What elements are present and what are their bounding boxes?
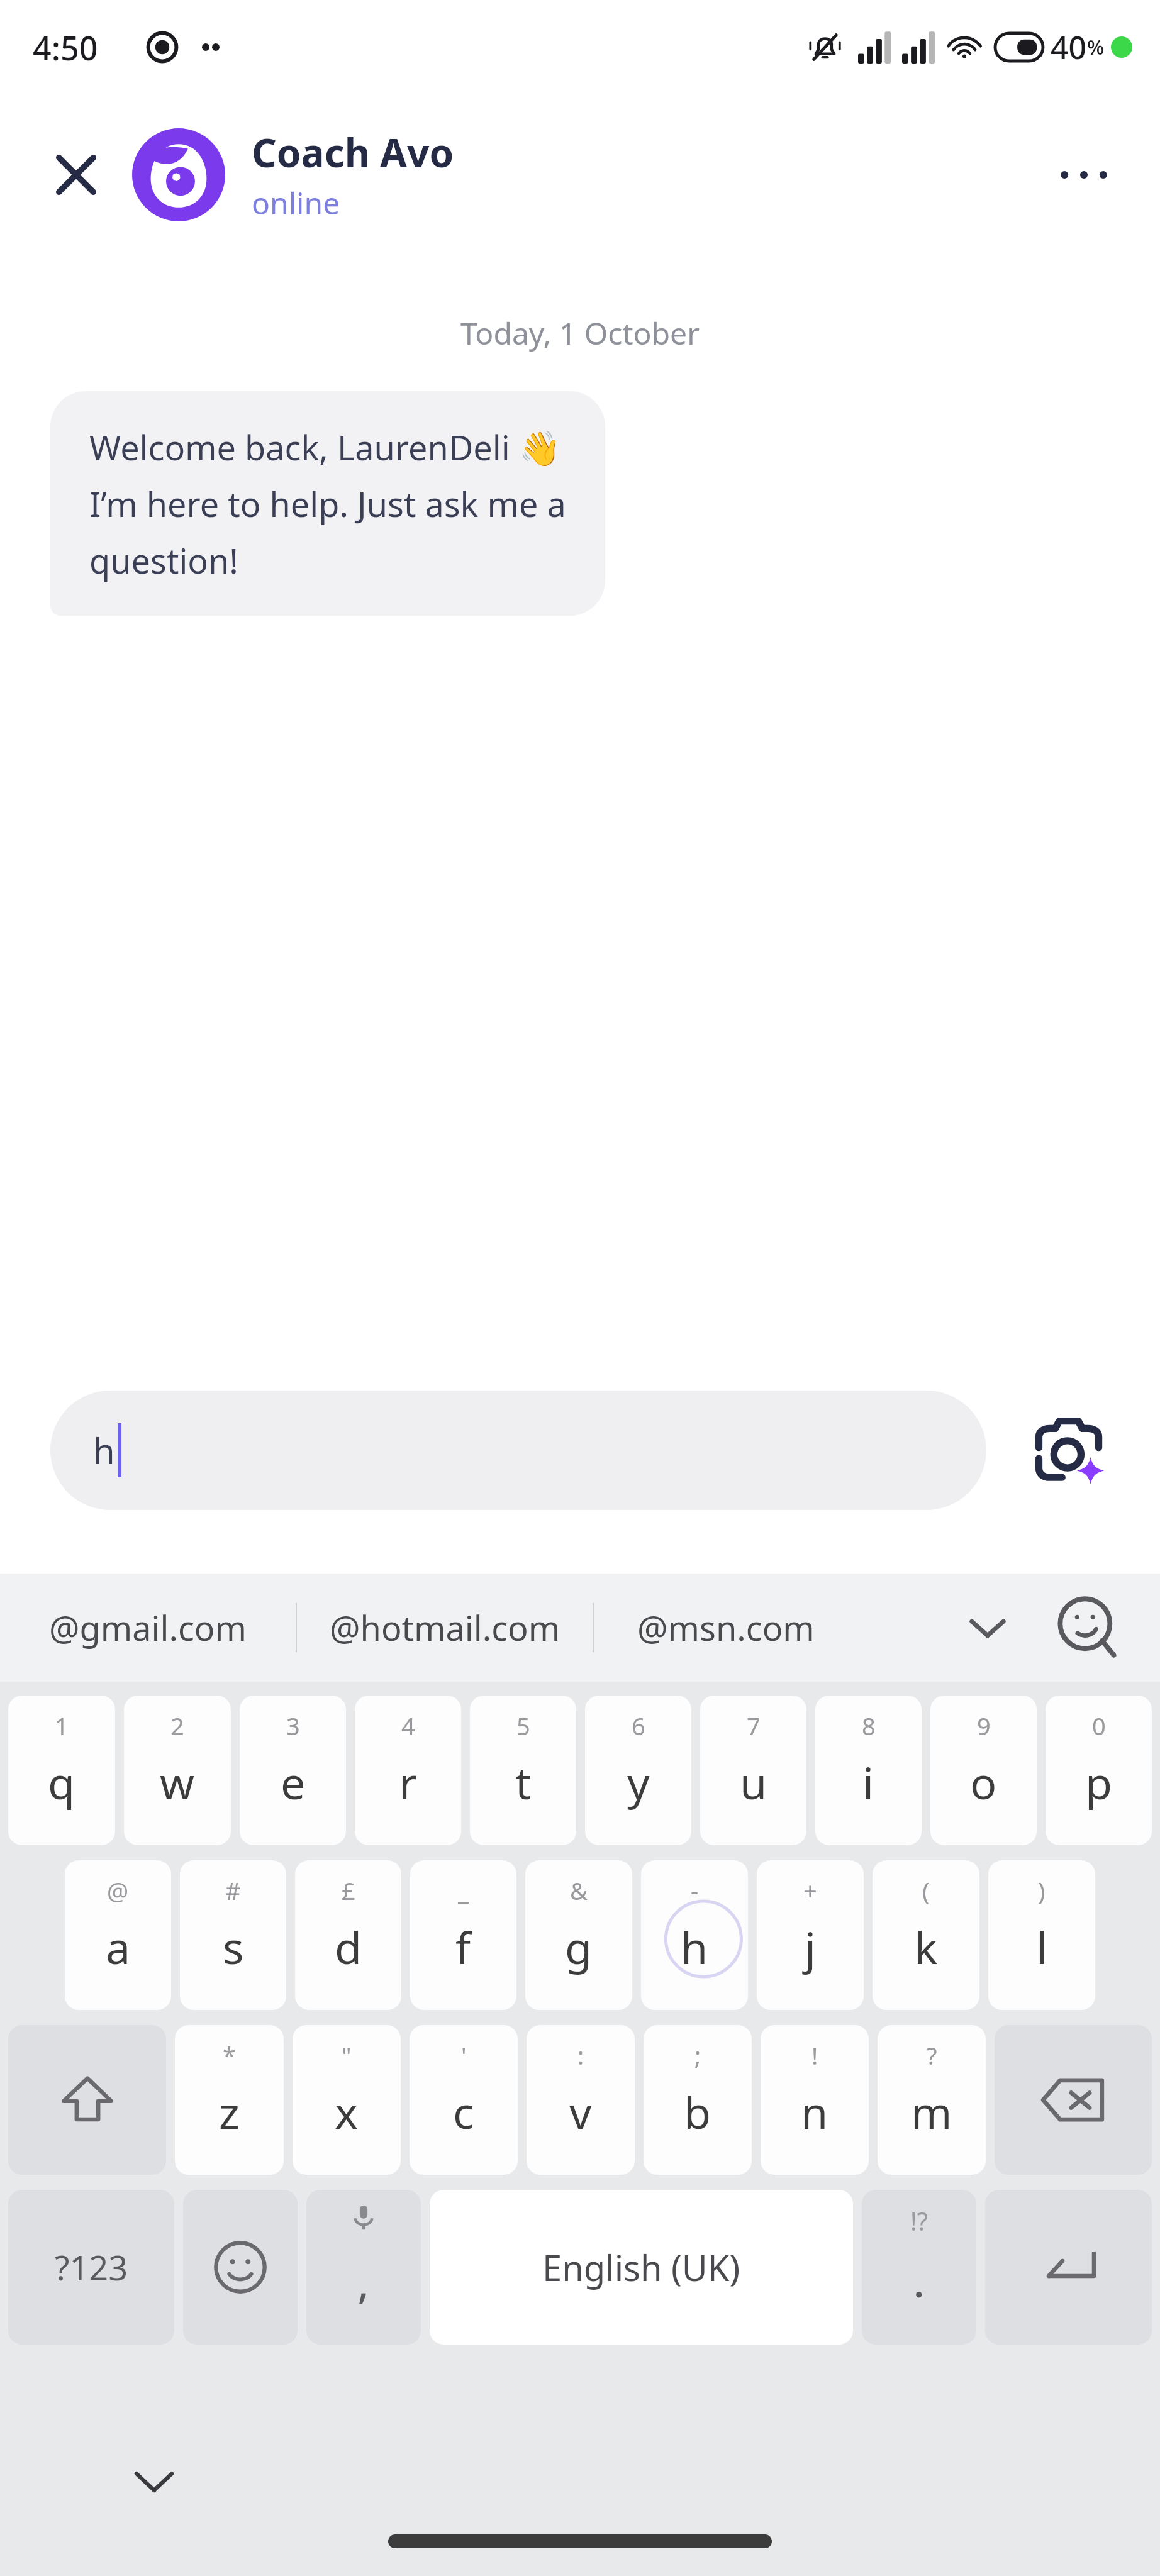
staticText: , — [357, 2250, 370, 2312]
staticText: & — [570, 1874, 588, 1907]
staticText: 2 — [170, 1709, 184, 1742]
staticText: a — [106, 1917, 131, 1977]
button[interactable]: ? — [878, 2025, 986, 2175]
staticText: 6 — [632, 1709, 645, 1742]
staticText: b — [684, 2082, 711, 2141]
staticText: 5 — [516, 1709, 530, 1742]
staticText: h — [93, 1426, 115, 1474]
staticText: o — [970, 1752, 997, 1812]
button[interactable]: Shift — [8, 2025, 166, 2175]
staticText: Welcome back, LaurenDeli 👋 I’m here to h… — [89, 424, 566, 583]
staticText: @hotmail.com — [330, 1604, 560, 1651]
button[interactable]: ! — [761, 2025, 869, 2175]
staticText: : — [577, 2039, 584, 2072]
button[interactable]: Emoji — [183, 2190, 298, 2345]
staticText: e — [281, 1752, 306, 1812]
button[interactable]: _ — [410, 1860, 516, 2010]
staticText: t — [515, 1752, 532, 1812]
staticText: j — [805, 1917, 817, 1977]
staticText: h — [681, 1917, 708, 1977]
button[interactable]: 9 — [930, 1696, 1037, 1845]
button[interactable]: 3 — [240, 1696, 346, 1845]
button[interactable]: 1 — [8, 1696, 115, 1845]
staticText: 7 — [747, 1709, 761, 1742]
button[interactable]: 6 — [585, 1696, 691, 1845]
button[interactable]: & — [525, 1860, 632, 2010]
button[interactable]: Close — [35, 134, 117, 216]
button[interactable]: !? — [862, 2190, 976, 2345]
other: Coach Avo avatar — [132, 128, 225, 221]
staticText: 4:50 — [33, 25, 98, 70]
button[interactable]: @hotmail.com — [297, 1574, 593, 1682]
staticText: 3 — [286, 1709, 300, 1742]
staticText: ? — [927, 2039, 937, 2072]
staticText: q — [48, 1752, 75, 1812]
button[interactable]: " — [293, 2025, 401, 2175]
staticText: 8 — [862, 1709, 876, 1742]
staticText: u — [740, 1752, 767, 1812]
staticText: @msn.com — [637, 1604, 815, 1651]
staticText: s — [223, 1917, 244, 1977]
staticText: @ — [107, 1874, 129, 1907]
button[interactable]: 0 — [1046, 1696, 1152, 1845]
button[interactable]: h — [50, 1391, 986, 1510]
staticText: % — [1087, 33, 1105, 61]
staticText: £ — [342, 1874, 355, 1907]
button[interactable]: Hide keyboard — [120, 2446, 189, 2516]
staticText: * — [223, 2039, 236, 2072]
staticText: Today, 1 October — [460, 313, 700, 353]
button[interactable]: 7 — [700, 1696, 806, 1845]
staticText: English (UK) — [542, 2243, 740, 2291]
staticText: 1 — [55, 1709, 69, 1742]
staticText: . — [913, 2249, 925, 2311]
button[interactable]: English (UK) — [430, 2190, 853, 2345]
button[interactable]: ?123 — [8, 2190, 174, 2345]
staticText: 0 — [1092, 1709, 1106, 1742]
button[interactable]: # — [180, 1860, 286, 2010]
staticText: w — [160, 1752, 195, 1812]
button[interactable]: 5 — [470, 1696, 576, 1845]
button[interactable]: 4 — [355, 1696, 461, 1845]
button[interactable]: Scan with camera — [1022, 1403, 1116, 1497]
staticText: g — [565, 1917, 593, 1977]
button[interactable]: 2 — [124, 1696, 231, 1845]
button[interactable]: Emoji search — [1040, 1580, 1135, 1675]
button[interactable]: @ — [65, 1860, 171, 2010]
staticText: d — [335, 1917, 362, 1977]
staticText: n — [801, 2082, 828, 2141]
staticText: l — [1036, 1917, 1048, 1977]
staticText: 9 — [977, 1709, 991, 1742]
button[interactable]: £ — [295, 1860, 401, 2010]
button[interactable]: ) — [988, 1860, 1095, 2010]
staticText: !? — [910, 2204, 929, 2238]
staticText: y — [627, 1752, 650, 1812]
staticText: k — [914, 1917, 938, 1977]
button[interactable]: @msn.com — [594, 1574, 858, 1682]
staticText: _ — [458, 1874, 469, 1907]
button[interactable]: Expand suggestions — [944, 1584, 1032, 1672]
button[interactable]: Enter — [985, 2190, 1152, 2345]
button[interactable]: : — [527, 2025, 635, 2175]
button[interactable]: More options — [1043, 134, 1125, 216]
button[interactable]: Welcome back, LaurenDeli 👋 I’m here to h… — [50, 391, 605, 616]
staticText: ! — [811, 2039, 818, 2072]
button[interactable]: * — [175, 2025, 284, 2175]
staticText: v — [569, 2082, 592, 2141]
button[interactable]: @gmail.com — [0, 1574, 296, 1682]
button[interactable]: Backspace — [995, 2025, 1152, 2175]
button[interactable]: + — [757, 1860, 864, 2010]
staticText: " — [342, 2039, 352, 2072]
staticText: ; — [694, 2039, 701, 2072]
button[interactable]: ( — [873, 1860, 979, 2010]
staticText: ( — [922, 1874, 930, 1907]
staticText: x — [335, 2082, 359, 2141]
button[interactable]: ' — [410, 2025, 518, 2175]
button[interactable]: - — [641, 1860, 748, 2010]
staticText: + — [803, 1874, 817, 1907]
button[interactable]: 8 — [815, 1696, 922, 1845]
button[interactable]: ; — [644, 2025, 752, 2175]
staticText: ?123 — [55, 2244, 128, 2290]
button[interactable]: , — [306, 2190, 421, 2345]
staticText: m — [911, 2082, 952, 2141]
staticText: r — [399, 1752, 417, 1812]
